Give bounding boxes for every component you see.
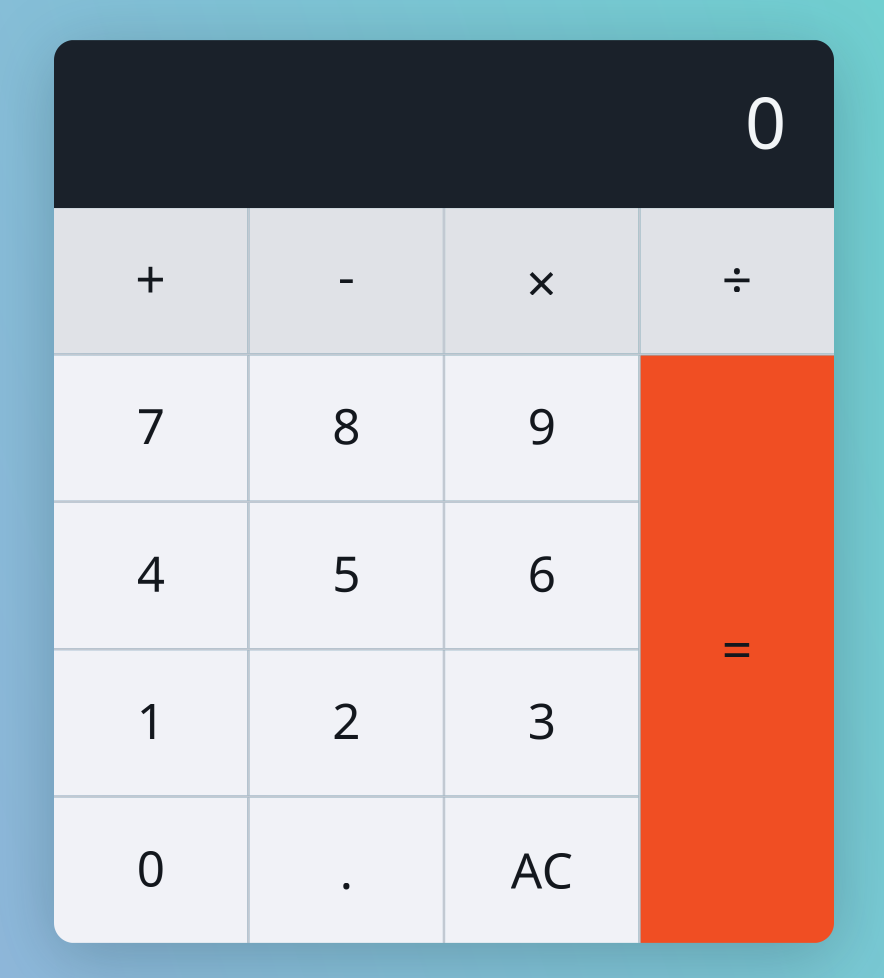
button[interactable]: 3 [445,650,638,795]
button[interactable]: 7 [54,355,247,501]
staticText: . [340,837,353,902]
staticText: 4 [137,540,165,605]
button[interactable]: + [54,208,247,353]
staticText: 0 [137,834,165,900]
staticText: AC [511,836,573,902]
staticText: 1 [137,687,165,753]
button[interactable]: 6 [445,503,638,648]
staticText: 0 [745,73,786,169]
button[interactable]: × [445,208,638,353]
button[interactable]: 2 [249,650,443,795]
button[interactable]: = [641,355,834,943]
button[interactable]: 8 [249,355,443,501]
button[interactable]: 4 [54,503,247,648]
button[interactable]: AC [445,798,638,943]
staticText: - [338,239,355,310]
staticText: 2 [332,687,360,753]
button[interactable]: 9 [445,355,638,501]
staticText: 6 [528,540,556,605]
button[interactable]: 5 [249,503,443,648]
staticText: + [135,242,166,313]
staticText: ÷ [722,242,753,313]
button[interactable]: 0 [54,798,247,943]
staticText: 9 [528,392,556,458]
staticText: × [526,246,557,317]
staticText: 3 [528,687,556,753]
button[interactable]: ÷ [641,208,834,353]
staticText: = [722,613,753,684]
button[interactable]: - [249,208,443,353]
staticText: 8 [332,392,360,458]
button[interactable]: . [249,798,443,943]
staticText: 5 [332,540,360,605]
button[interactable]: 1 [54,650,247,795]
staticText: 7 [137,392,165,458]
